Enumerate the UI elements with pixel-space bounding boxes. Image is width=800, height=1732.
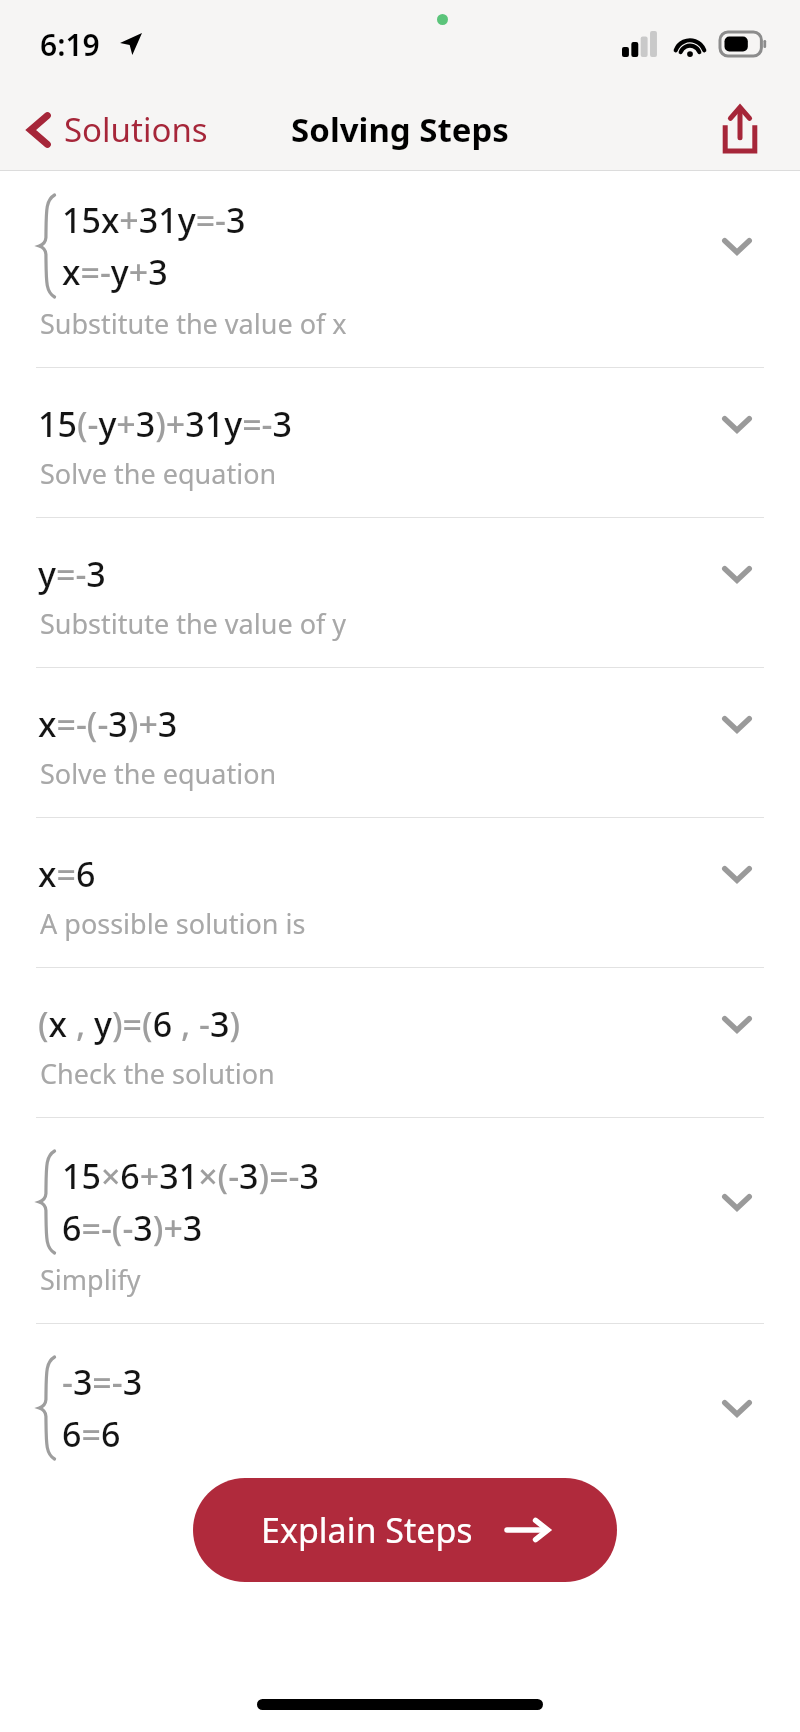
staticText: Explain Steps (261, 1507, 473, 1553)
staticText: A possible solution is (40, 905, 306, 942)
button[interactable]: x=6 (0, 843, 800, 993)
button[interactable]: (x , y)=(6 , -3) (0, 993, 800, 1143)
staticText: x=-(-3)+3 (38, 701, 178, 747)
button[interactable]: x=-(-3)+3 (0, 693, 800, 843)
staticText: 15x+31y=-3 (62, 197, 246, 243)
staticText: Simplify (40, 1261, 141, 1298)
button[interactable]: 15×6+31×(-3)=-3 (0, 1143, 800, 1349)
staticText: x=-y+3 (62, 249, 168, 295)
staticText: y=-3 (38, 551, 106, 597)
button[interactable]: -3=-3 (0, 1349, 800, 1467)
button[interactable]: Share (710, 95, 770, 163)
staticText: -3=-3 (62, 1359, 143, 1405)
staticText: Solving Steps (291, 107, 509, 152)
staticText: Solve the equation (40, 455, 277, 492)
staticText: x=6 (38, 851, 96, 897)
staticText: 6:19 (40, 24, 100, 65)
button[interactable]: 15x+31y=-3 (0, 187, 800, 393)
staticText: Substitute the value of y (40, 605, 347, 642)
button[interactable]: 15(-y+3)+31y=-3 (0, 393, 800, 543)
staticText: (x , y)=(6 , -3) (38, 1001, 241, 1047)
staticText: Substitute the value of x (40, 305, 347, 342)
staticText: Solve the equation (40, 755, 277, 792)
button[interactable]: Solutions (16, 99, 220, 160)
staticText: 15×6+31×(-3)=-3 (62, 1153, 319, 1199)
staticText: Solutions (64, 107, 208, 152)
staticText: 6=-(-3)+3 (62, 1205, 203, 1251)
button[interactable]: Explain Steps (193, 1478, 617, 1582)
staticText: Check the solution (40, 1055, 275, 1092)
staticText: 15(-y+3)+31y=-3 (38, 401, 292, 447)
staticText: 6=6 (62, 1411, 121, 1457)
button[interactable]: y=-3 (0, 543, 800, 693)
